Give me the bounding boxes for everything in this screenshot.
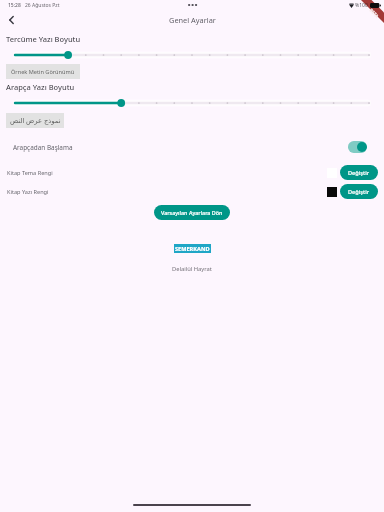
button[interactable]: Geri	[1, 10, 21, 30]
staticText: Değiştir	[348, 188, 370, 196]
staticText: Kitap Tema Rengi	[7, 169, 53, 177]
staticText: Varsayılan Ayarlara Dön	[161, 209, 223, 216]
staticText: 15:28	[8, 2, 21, 9]
staticText: نموذج عرض النص	[10, 116, 61, 125]
staticText: Değiştir	[348, 169, 370, 177]
staticText: Arapça Yazı Boyutu	[6, 82, 75, 92]
staticText: Örnek Metin Görünümü	[11, 68, 75, 76]
staticText: Genel Ayarlar	[169, 15, 216, 25]
button[interactable]: Yazı boyutu kaydırıcı	[0, 48, 384, 62]
staticText: BETA	[368, 7, 380, 19]
button[interactable]: Değiştir	[340, 165, 378, 180]
button[interactable]: Örnek Metin Görünümü	[6, 64, 80, 79]
staticText: Kitap Yazı Rengi	[7, 188, 49, 196]
staticText: Arapçadan Başlama	[13, 143, 73, 152]
staticText: SEMERKAND	[175, 245, 210, 253]
button[interactable]: Yazı boyutu kaydırıcı	[0, 96, 384, 110]
button[interactable]: Değiştir	[340, 184, 378, 199]
staticText: Tercüme Yazı Boyutu	[6, 34, 81, 44]
staticText: %100	[355, 2, 368, 9]
staticText: 26 Ağustos Pzt	[25, 2, 60, 9]
button[interactable]: Varsayılan Ayarlara Dön	[154, 205, 230, 220]
staticText: Delailül Hayrat	[172, 265, 212, 273]
button[interactable]: نموذج عرض النص	[6, 113, 64, 128]
button[interactable]: Arapçadan Başlama	[0, 137, 384, 157]
